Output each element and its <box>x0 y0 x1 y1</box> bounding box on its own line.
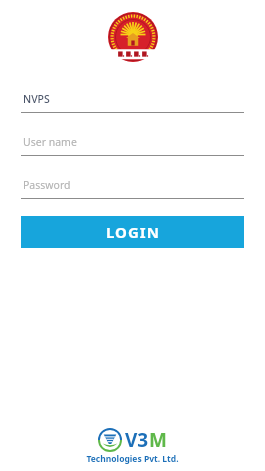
staticText: M <box>149 427 167 453</box>
staticText: LOGIN <box>106 222 160 242</box>
staticText: User name <box>23 135 77 149</box>
button[interactable]: LOGIN <box>21 216 244 248</box>
staticText: Password <box>23 178 71 192</box>
button[interactable]: Password <box>21 178 244 199</box>
staticText: Technologies Pvt. Ltd. <box>86 453 179 465</box>
button[interactable]: User name <box>21 135 244 156</box>
button[interactable]: NVPS <box>21 92 244 113</box>
staticText: NVPS <box>23 92 50 106</box>
staticText: V3 <box>125 427 149 453</box>
